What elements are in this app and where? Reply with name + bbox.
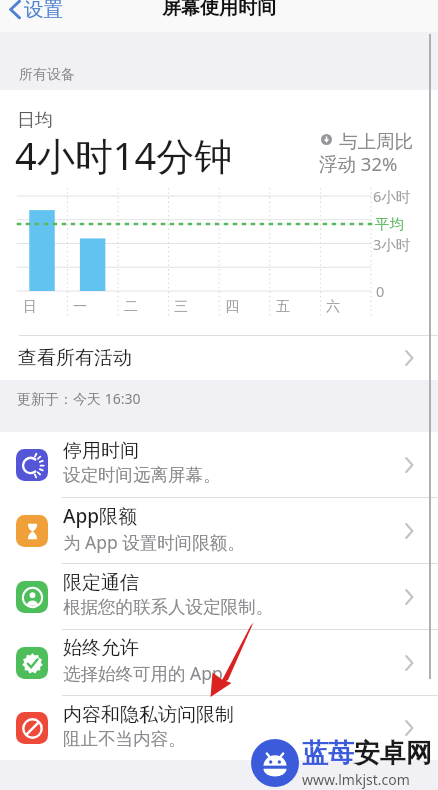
staticText: 屏幕使用时间: [162, 0, 276, 20]
staticText: 停用时间: [63, 439, 139, 463]
button[interactable]: 查看所有活动: [0, 336, 438, 380]
staticText: 六: [326, 298, 340, 316]
staticText: App限额: [63, 503, 138, 529]
button[interactable]: 内容和隐私访问限制: [0, 696, 438, 760]
staticText: 三: [174, 298, 188, 316]
staticText: 6小时: [373, 186, 411, 206]
staticText: 五: [276, 298, 290, 316]
staticText: 查看所有活动: [18, 346, 132, 370]
staticText: 更新于：今天 16:30: [17, 389, 141, 408]
staticText: 4小时14分钟: [15, 129, 233, 181]
staticText: 为 App 设置时间限额。: [63, 530, 245, 554]
staticText: 安卓网: [354, 737, 432, 770]
staticText: 浮动 32%: [319, 151, 398, 176]
staticText: 所有设备: [19, 66, 75, 84]
button[interactable]: 停用时间: [0, 432, 438, 498]
staticText: 设定时间远离屏幕。: [63, 464, 221, 486]
staticText: 限定通信: [63, 571, 139, 595]
staticText: 四: [225, 298, 239, 316]
button[interactable]: 限定通信: [0, 564, 438, 630]
staticText: 内容和隐私访问限制: [63, 703, 234, 727]
staticText: 阻止不当内容。: [63, 728, 186, 750]
other: Annotation arrow: [0, 0, 438, 790]
staticText: 根据您的联系人设定限制。: [63, 596, 273, 618]
staticText: 蓝苺: [302, 737, 354, 770]
button[interactable]: 设置: [0, 0, 63, 22]
staticText: 设置: [24, 0, 63, 22]
staticText: 平均: [375, 215, 404, 233]
staticText: 始终允许: [63, 636, 139, 660]
staticText: www.lmkjst.com: [302, 770, 410, 789]
staticText: 日: [23, 298, 37, 316]
staticText: 与上周比: [339, 130, 413, 153]
staticText: 选择始终可用的 App: [63, 661, 223, 685]
button[interactable]: App限额: [0, 498, 438, 564]
staticText: 3小时: [373, 234, 411, 254]
button[interactable]: 始终允许: [0, 630, 438, 696]
staticText: 一: [73, 298, 87, 316]
staticText: 日均: [17, 109, 53, 132]
staticText: 二: [124, 298, 138, 316]
staticText: 0: [376, 281, 385, 301]
